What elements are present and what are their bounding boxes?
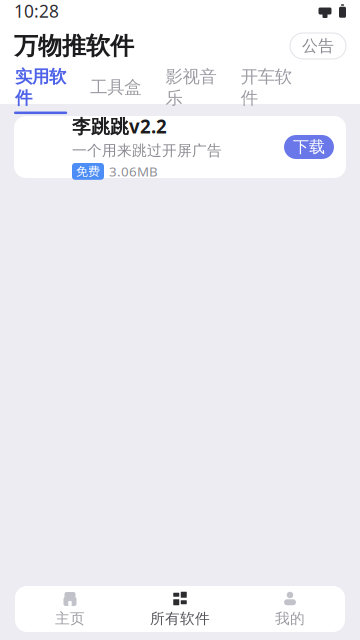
staticText: 主页 [55,609,85,627]
staticText: 下载 [293,137,325,157]
button[interactable]: 我的 [235,586,345,632]
staticText: 影视音乐 [165,66,216,109]
staticText: 开车软件 [241,66,292,109]
staticText: 10:28 [14,0,59,22]
button[interactable]: 公告 [290,33,346,59]
staticText: 公告 [302,36,334,56]
staticText: 万物推软件 [14,31,134,61]
staticText: 免费 [76,164,100,179]
button[interactable]: 开车软件 [240,60,293,114]
button[interactable]: 影视音乐 [164,60,218,114]
button[interactable]: 主页 [15,586,125,632]
staticText: 实用软件 [15,66,66,109]
staticText: 工具盒 [90,77,141,98]
staticText: 我的 [275,609,305,627]
button[interactable]: 所有软件 [125,586,235,632]
staticText: 3.06MB [109,162,158,180]
button[interactable]: 李跳跳v2.2 [14,116,346,178]
button[interactable]: 工具盒 [89,71,142,103]
staticText: 李跳跳v2.2 [72,114,167,138]
staticText: 所有软件 [150,609,210,627]
staticText: 一个用来跳过开屏广告 [72,141,222,159]
button[interactable]: 实用软件 [14,60,67,114]
